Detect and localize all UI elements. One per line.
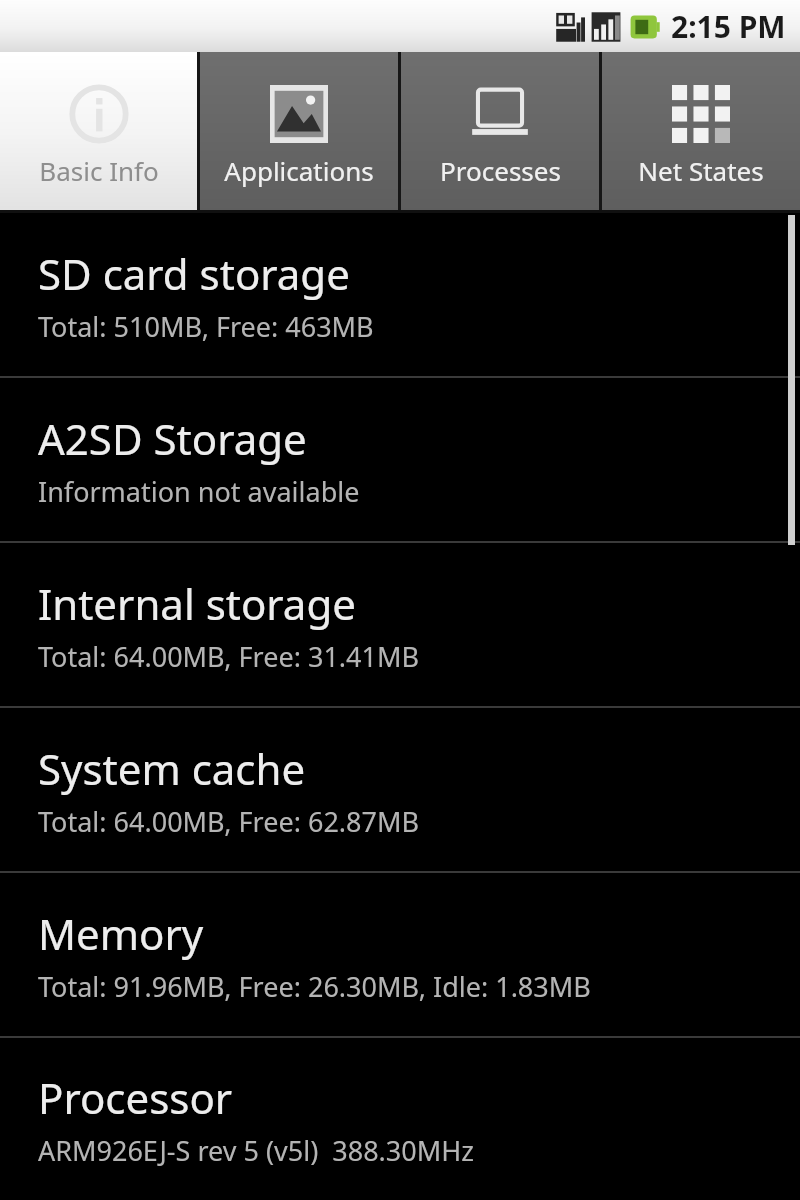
staticText: Net States <box>638 153 764 188</box>
staticText: Processes <box>440 153 561 188</box>
staticText: 2:15 PM <box>671 6 786 47</box>
button[interactable]: Internal storage <box>0 543 800 706</box>
staticText: Total: 64.00MB, Free: 62.87MB <box>38 803 419 840</box>
button[interactable]: Processor <box>0 1038 800 1200</box>
staticText: ARM926EJ-S rev 5 (v5l) 388.30MHz <box>38 1132 474 1169</box>
staticText: Applications <box>224 153 374 188</box>
button[interactable]: SD card storage <box>0 213 800 376</box>
staticText: Total: 510MB, Free: 463MB <box>38 308 374 345</box>
staticText: Memory <box>38 905 204 962</box>
staticText: Total: 64.00MB, Free: 31.41MB <box>38 638 419 675</box>
staticText: Basic Info <box>39 153 159 188</box>
button[interactable]: Applications <box>200 52 398 213</box>
button[interactable]: Memory <box>0 873 800 1036</box>
button[interactable]: System cache <box>0 708 800 871</box>
button[interactable]: Processes <box>401 52 599 213</box>
staticText: System cache <box>38 740 306 797</box>
button[interactable]: Basic Info <box>0 52 197 213</box>
button[interactable]: Net States <box>602 52 800 213</box>
staticText: Total: 91.96MB, Free: 26.30MB, Idle: 1.8… <box>38 968 591 1005</box>
staticText: A2SD Storage <box>38 410 307 467</box>
staticText: Processor <box>38 1069 233 1126</box>
button[interactable]: A2SD Storage <box>0 378 800 541</box>
staticText: Internal storage <box>38 575 356 632</box>
staticText: SD card storage <box>38 245 350 302</box>
staticText: Information not available <box>38 473 360 510</box>
